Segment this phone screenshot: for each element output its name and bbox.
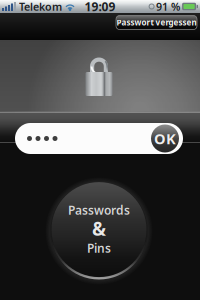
staticText: 91 % bbox=[156, 0, 180, 14]
staticText: OK bbox=[154, 129, 176, 148]
button[interactable]: Passwort vergessen bbox=[116, 15, 197, 29]
staticText: Passwort vergessen bbox=[116, 17, 196, 28]
staticText: Passwords bbox=[68, 202, 130, 218]
staticText: Pins bbox=[87, 240, 111, 256]
button[interactable]: Passwords bbox=[51, 183, 147, 279]
staticText: 19:09 bbox=[84, 0, 115, 14]
staticText: & bbox=[92, 216, 106, 241]
button[interactable]: OK bbox=[151, 124, 179, 152]
staticText: Telekom bbox=[19, 0, 62, 14]
